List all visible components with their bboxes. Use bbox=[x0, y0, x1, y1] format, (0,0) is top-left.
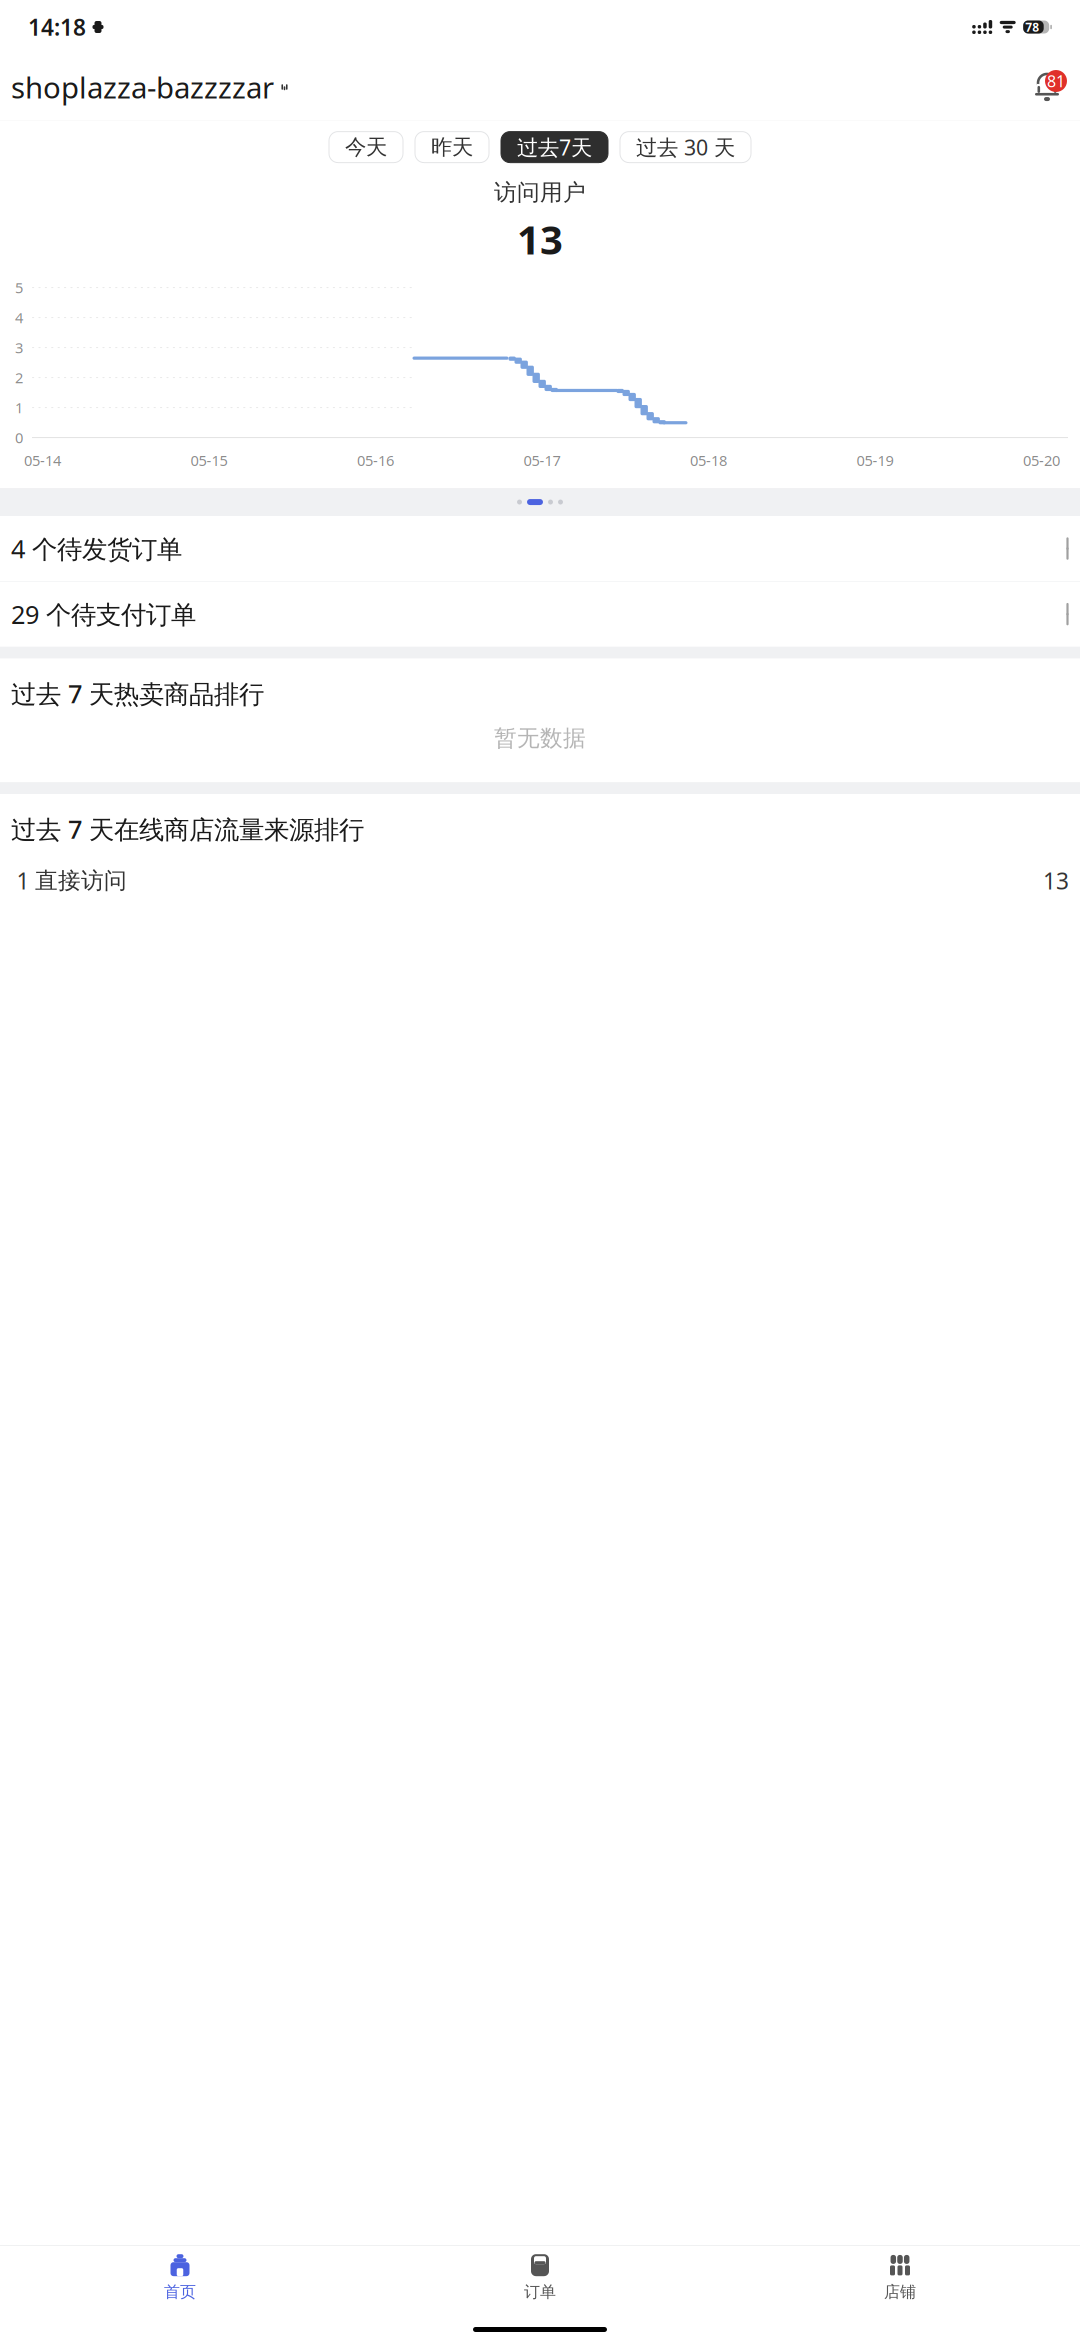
button[interactable]: 店铺 bbox=[720, 2246, 1080, 2308]
staticText: 暂无数据 bbox=[494, 724, 586, 752]
staticText: 0 bbox=[15, 428, 23, 447]
staticText: 2 bbox=[15, 368, 23, 387]
button[interactable]: 昨天 bbox=[415, 132, 489, 163]
staticText: 过去 30 天 bbox=[636, 133, 735, 161]
staticText: 13 bbox=[517, 212, 563, 265]
staticText: 05-18 bbox=[690, 451, 727, 470]
staticText: 过去 7 天热卖商品排行 bbox=[11, 677, 264, 710]
staticText: 05-16 bbox=[357, 451, 394, 470]
button[interactable]: shoplazza-bazzzzar bbox=[11, 59, 289, 114]
staticText: 05-14 bbox=[24, 451, 61, 470]
button[interactable]: 订单 bbox=[360, 2246, 720, 2308]
staticText: 29 个待支付订单 bbox=[11, 597, 196, 631]
staticText: 4 bbox=[15, 308, 23, 327]
button[interactable]: 过去 30 天 bbox=[620, 132, 751, 163]
staticText: 1 bbox=[15, 398, 23, 417]
staticText: 今天 bbox=[345, 134, 387, 160]
staticText: 05-20 bbox=[1023, 451, 1060, 470]
button[interactable]: 4 个待发货订单 bbox=[0, 516, 1080, 581]
staticText: 05-15 bbox=[190, 451, 227, 470]
staticText: 1 bbox=[16, 866, 29, 896]
staticText: 13 bbox=[1043, 866, 1069, 896]
button[interactable]: 今天 bbox=[329, 132, 403, 163]
staticText: 81 bbox=[1047, 70, 1065, 92]
staticText: 4 个待发货订单 bbox=[11, 532, 182, 565]
button[interactable]: 首页 bbox=[0, 2246, 360, 2308]
staticText: 05-17 bbox=[523, 451, 560, 470]
button[interactable]: Notifications, 81 unread bbox=[1025, 67, 1069, 107]
staticText: shoplazza-bazzzzar bbox=[11, 67, 274, 106]
staticText: 3 bbox=[15, 338, 23, 357]
button[interactable]: 29 个待支付订单 bbox=[0, 582, 1080, 647]
staticText: 首页 bbox=[164, 2282, 196, 2302]
staticText: 昨天 bbox=[431, 134, 473, 160]
staticText: 5 bbox=[15, 278, 23, 297]
staticText: 过去 7 天在线商店流量来源排行 bbox=[11, 812, 364, 846]
staticText: 店铺 bbox=[884, 2282, 916, 2302]
staticText: 14:18 bbox=[28, 12, 86, 42]
staticText: 05-19 bbox=[856, 451, 893, 470]
button[interactable]: 过去7天 bbox=[501, 132, 608, 163]
staticText: 直接访问 bbox=[35, 867, 127, 895]
staticText: 过去7天 bbox=[517, 133, 592, 161]
staticText: 订单 bbox=[524, 2282, 556, 2302]
staticText: 访问用户 bbox=[494, 179, 586, 206]
staticText: 78 bbox=[1025, 19, 1039, 35]
